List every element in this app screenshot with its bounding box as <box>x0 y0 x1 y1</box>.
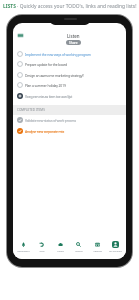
button[interactable]: Design an awesome marketing strategy!! <box>13 70 126 80</box>
staticText: Validate new status of work process <box>25 118 76 123</box>
button[interactable]: Cloud <box>52 241 69 252</box>
button[interactable]: Reminders <box>15 241 32 252</box>
button[interactable]: Validate new status of work process <box>13 115 126 125</box>
staticText: Agenda <box>93 249 102 252</box>
staticText: Plan a summer holiday 2019 <box>25 83 66 88</box>
staticText: Analyse new corporate mtx <box>25 129 65 134</box>
button[interactable]: Voeg een nieuw item toe aan lijst <box>13 91 126 101</box>
staticText: Prepare update for the board <box>25 62 67 67</box>
staticText: Share <box>69 41 78 45</box>
staticText: LISTS · Quickly access your TODO's, link… <box>3 3 137 10</box>
button[interactable]: Open navigation menu <box>17 32 24 39</box>
staticText: COMPLETED ITEMS <box>17 108 45 112</box>
staticText: Reminders <box>17 249 30 252</box>
staticText: Voeg een nieuw item toe aan lijst <box>25 94 72 99</box>
button[interactable]: Plan a summer holiday 2019 <box>13 80 126 90</box>
staticText: Implement the new ways of working progra… <box>25 52 91 57</box>
staticText: Sync <box>39 249 45 252</box>
button[interactable]: Analyse new corporate mtx <box>13 126 126 136</box>
button[interactable]: Sync <box>33 241 50 252</box>
button[interactable]: Search <box>70 241 87 252</box>
staticText: Design an awesome marketing strategy!! <box>25 73 84 78</box>
button[interactable]: Share <box>69 40 78 45</box>
staticText: Search <box>75 249 83 252</box>
button[interactable]: Prepare update for the board <box>13 59 126 69</box>
staticText: My account <box>109 249 122 252</box>
button[interactable]: Agenda <box>89 241 106 252</box>
button[interactable]: Implement the new ways of working progra… <box>13 49 126 59</box>
staticText: Cloud <box>57 249 64 252</box>
staticText: Listen <box>67 33 80 39</box>
button[interactable]: My account <box>107 241 124 252</box>
